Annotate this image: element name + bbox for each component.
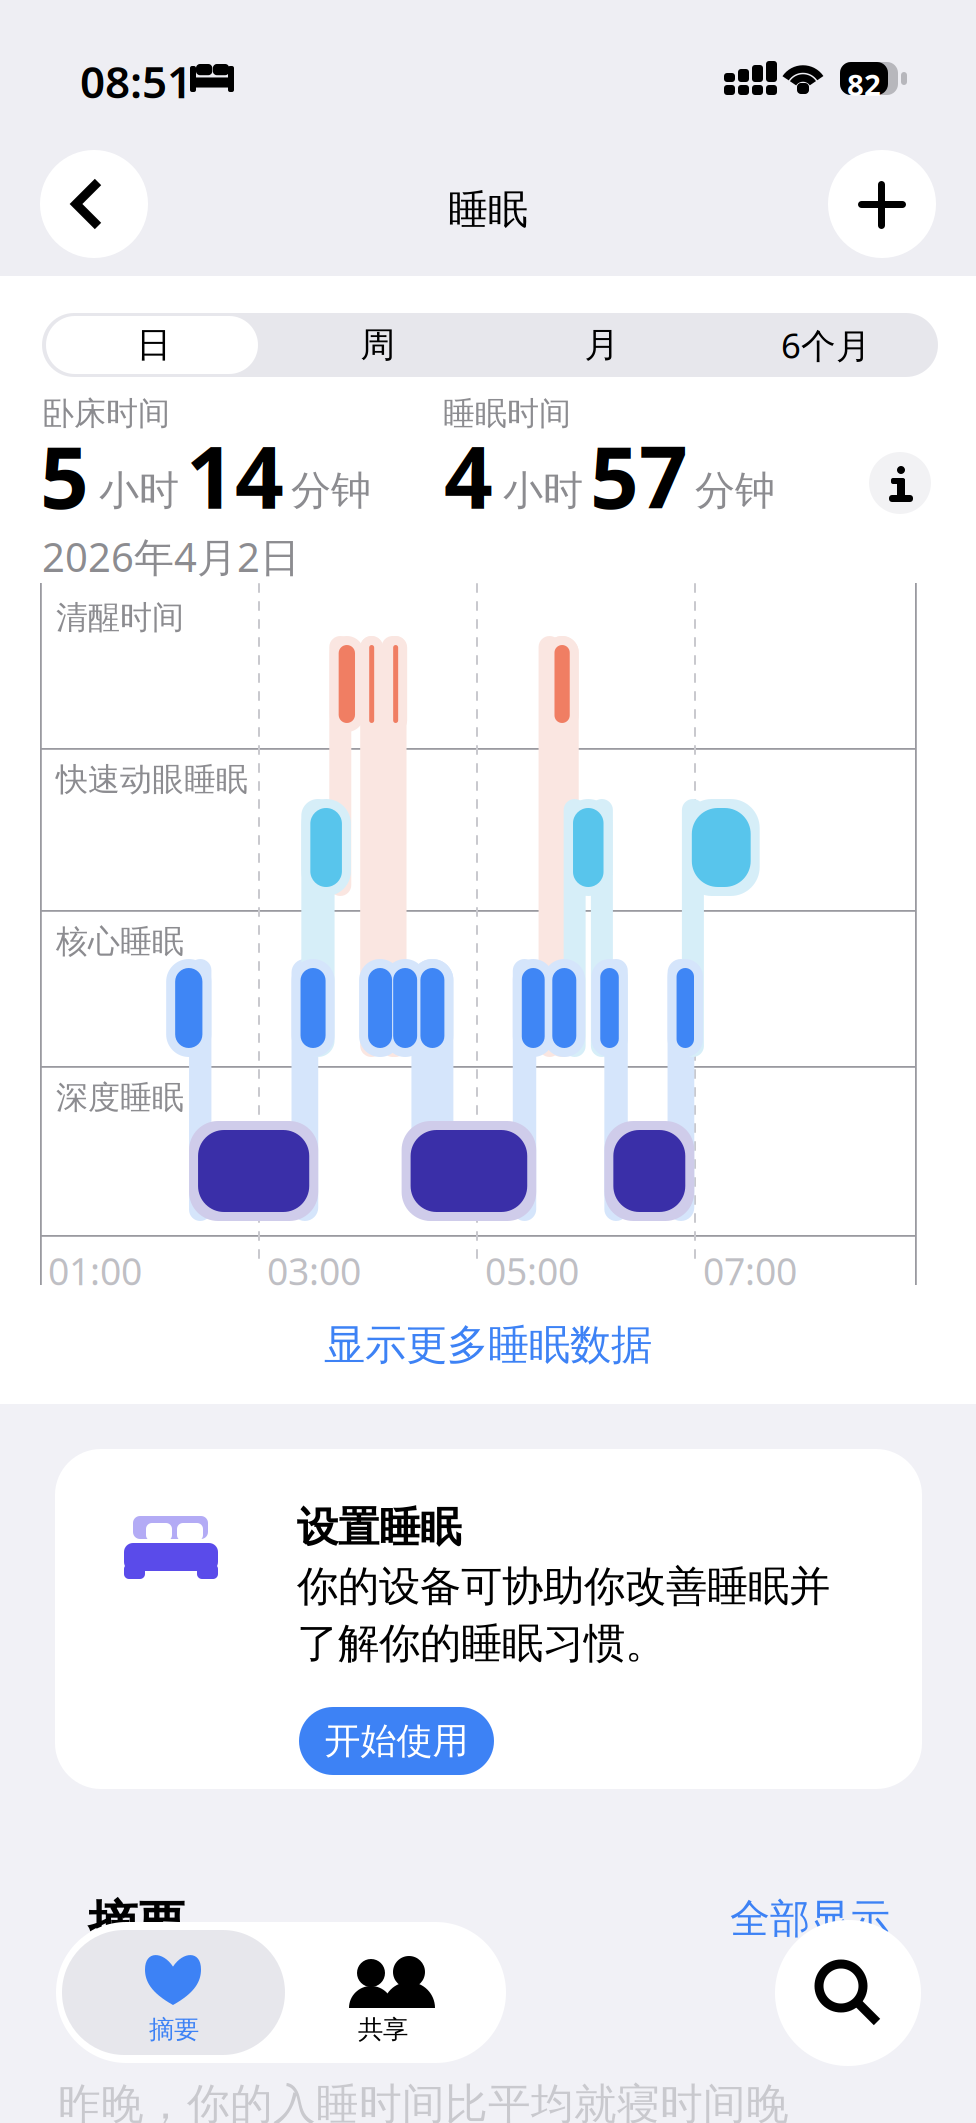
staticText: 全部显示 bbox=[730, 1894, 890, 1943]
staticText: 你的设备可协助你改善睡眠并 bbox=[297, 1561, 830, 1612]
staticText: 开始使用 bbox=[324, 1719, 468, 1763]
staticText: 2026年4月2日 bbox=[42, 530, 300, 583]
staticText: 03:00 bbox=[267, 1246, 361, 1296]
staticText: 核心睡眠 bbox=[56, 922, 184, 961]
button[interactable]: 6个月 bbox=[714, 313, 938, 377]
staticText: 08:51 bbox=[80, 52, 192, 110]
staticText: 摘要 bbox=[88, 1894, 186, 1955]
staticText: 睡眠 bbox=[448, 185, 528, 234]
staticText: 14 bbox=[186, 419, 284, 532]
staticText: 设置睡眠 bbox=[297, 1502, 461, 1553]
staticText: 显示更多睡眠数据 bbox=[324, 1320, 652, 1370]
button[interactable]: 添加 bbox=[828, 150, 936, 258]
button[interactable]: 开始使用 bbox=[299, 1707, 494, 1775]
staticText: 4 bbox=[444, 419, 493, 532]
staticText: 01:00 bbox=[48, 1246, 142, 1296]
button[interactable]: 摘要 bbox=[62, 1930, 285, 2055]
staticText: 82 bbox=[847, 65, 881, 104]
staticText: 摘要 bbox=[149, 2014, 199, 2045]
button[interactable]: 显示更多睡眠数据 bbox=[0, 1305, 976, 1385]
staticText: 日 bbox=[136, 324, 171, 366]
staticText: 周 bbox=[360, 324, 395, 366]
staticText: 6个月 bbox=[781, 322, 871, 368]
button[interactable]: 日 bbox=[42, 313, 266, 377]
button[interactable]: 月 bbox=[490, 313, 714, 377]
staticText: 快速动眼睡眠 bbox=[56, 760, 248, 799]
staticText: 分钟 bbox=[695, 466, 775, 515]
button[interactable]: 搜索 bbox=[775, 1920, 921, 2066]
staticText: 07:00 bbox=[703, 1246, 797, 1296]
staticText: 小时 bbox=[99, 466, 179, 515]
staticText: 昨晚，你的入睡时间比平均就寝时间晚 bbox=[58, 2078, 789, 2123]
staticText: 睡眠时间 bbox=[443, 394, 571, 433]
button[interactable]: 信息 bbox=[869, 452, 931, 514]
staticText: 了解你的睡眠习惯。 bbox=[297, 1618, 666, 1669]
staticText: 分钟 bbox=[291, 466, 371, 515]
button[interactable]: 全部显示 bbox=[690, 1892, 890, 1946]
staticText: 清醒时间 bbox=[56, 598, 184, 637]
staticText: 05:00 bbox=[485, 1246, 579, 1296]
staticText: 57 bbox=[590, 419, 688, 532]
button[interactable]: 周 bbox=[266, 313, 490, 377]
staticText: 深度睡眠 bbox=[56, 1078, 184, 1117]
button[interactable]: 返回 bbox=[40, 150, 148, 258]
staticText: 小时 bbox=[503, 466, 583, 515]
button[interactable]: 共享 bbox=[285, 1930, 506, 2055]
staticText: 5 bbox=[40, 419, 89, 532]
staticText: 卧床时间 bbox=[42, 394, 170, 433]
staticText: 月 bbox=[584, 324, 619, 366]
staticText: 共享 bbox=[358, 2014, 408, 2045]
